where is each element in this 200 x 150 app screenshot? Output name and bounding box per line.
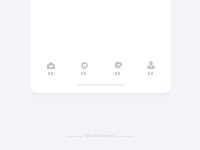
button[interactable]: Profile <box>134 61 167 75</box>
button[interactable]: Mail <box>34 61 67 75</box>
button[interactable]: Settings <box>67 61 100 75</box>
staticText: Tab Bar Motion <box>85 133 115 139</box>
button[interactable]: Messages <box>101 61 134 75</box>
